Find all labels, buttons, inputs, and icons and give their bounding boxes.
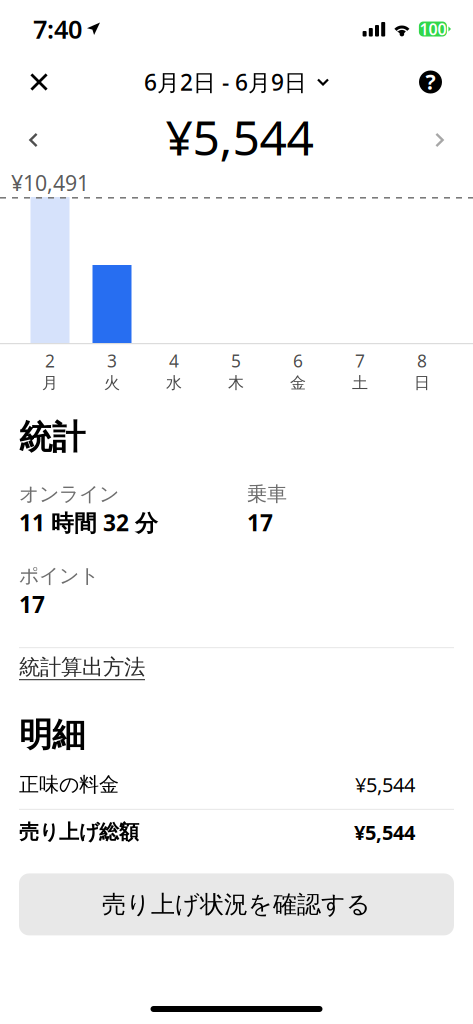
staticText: 統計 xyxy=(19,417,85,458)
button[interactable]: Close xyxy=(19,63,59,101)
staticText: 11 時間 32 分 xyxy=(19,507,158,537)
button[interactable]: Help xyxy=(407,62,454,101)
staticText: 土 xyxy=(352,373,368,393)
button[interactable]: Previous week xyxy=(14,113,53,155)
staticText: 正味の料金 xyxy=(19,772,119,797)
button[interactable]: Next week xyxy=(420,113,459,155)
staticText: 金 xyxy=(290,373,306,393)
staticText: 6月2日 - 6月9日 xyxy=(144,67,307,97)
staticText: 売り上げ総額 xyxy=(19,820,139,844)
staticText: ¥5,544 xyxy=(165,105,313,169)
staticText: 17 xyxy=(19,589,45,619)
staticText: 7 xyxy=(355,349,365,372)
button[interactable]: 6月2日 - 6月9日 xyxy=(136,59,337,105)
staticText: 17 xyxy=(247,507,273,537)
staticText: ¥5,544 xyxy=(354,819,415,845)
staticText: 売り上げ状況を確認する xyxy=(102,890,371,919)
staticText: 明細 xyxy=(19,714,85,755)
button[interactable]: 統計算出方法 xyxy=(19,648,145,686)
staticText: ポイント xyxy=(19,563,99,588)
staticText: オンライン xyxy=(19,482,119,506)
staticText: 4 xyxy=(169,349,179,372)
staticText: 水 xyxy=(166,373,182,393)
staticText: ¥10,491 xyxy=(11,169,89,197)
staticText: 木 xyxy=(228,373,244,393)
staticText: ? xyxy=(425,67,435,96)
staticText: 乗車 xyxy=(247,482,287,506)
staticText: 日 xyxy=(414,373,430,393)
staticText: 8 xyxy=(417,349,427,372)
button[interactable]: 売り上げ状況を確認する xyxy=(19,873,454,935)
staticText: 3 xyxy=(107,349,117,372)
staticText: 統計算出方法 xyxy=(19,654,145,680)
staticText: ¥5,544 xyxy=(355,771,415,798)
staticText: 火 xyxy=(104,373,120,393)
staticText: 7:40 xyxy=(33,12,82,46)
staticText: 月 xyxy=(42,373,58,393)
staticText: 5 xyxy=(231,349,241,372)
staticText: 6 xyxy=(293,349,303,372)
staticText: 2 xyxy=(45,349,55,372)
staticText: 100 xyxy=(419,18,446,40)
